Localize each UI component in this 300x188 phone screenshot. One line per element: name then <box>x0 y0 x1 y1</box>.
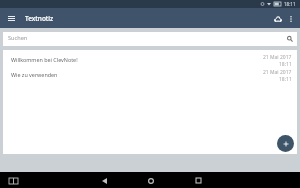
staticText: 21 Mai 2017 <box>263 69 292 76</box>
button[interactable]: Recent apps <box>192 174 205 187</box>
button[interactable]: Back <box>98 174 111 187</box>
button[interactable]: Suchen <box>3 32 297 46</box>
button[interactable]: Keyboard <box>8 175 19 186</box>
button[interactable]: More options <box>284 12 297 25</box>
staticText: Wie zu verwenden <box>11 71 58 78</box>
button[interactable]: Open navigation menu <box>5 12 18 25</box>
button[interactable]: Willkommen bei ClevNote! <box>3 53 297 68</box>
button[interactable]: Home <box>144 174 157 187</box>
staticText: 18:11 <box>279 61 292 68</box>
button[interactable]: Add note <box>277 135 294 152</box>
staticText: 18:11 <box>284 1 296 7</box>
staticText: Willkommen bei ClevNote! <box>11 56 78 63</box>
button[interactable]: Cloud sync <box>271 12 285 26</box>
staticText: 21 Mai 2017 <box>263 54 292 61</box>
staticText: 18:11 <box>279 76 292 83</box>
staticText: Suchen <box>8 34 28 42</box>
button[interactable]: Wie zu verwenden <box>3 68 297 83</box>
staticText: Textnotiz <box>25 14 54 23</box>
